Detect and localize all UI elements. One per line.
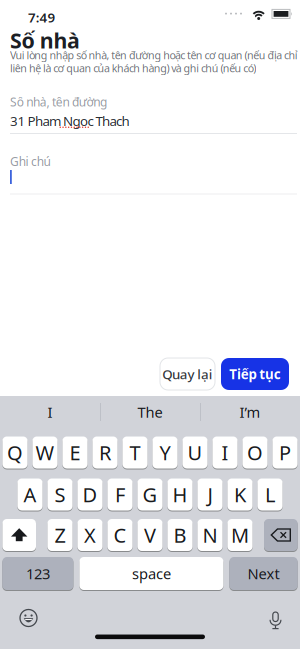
staticText: S [54, 481, 65, 508]
staticText: U [187, 439, 202, 466]
staticText: R [99, 439, 111, 466]
button[interactable]: I [212, 436, 238, 469]
staticText: T [129, 439, 140, 466]
staticText: P [279, 439, 291, 466]
button[interactable]: I’m [202, 400, 298, 424]
button[interactable]: W [32, 436, 58, 469]
button[interactable]: U [182, 436, 208, 469]
staticText: H [172, 481, 187, 508]
staticText: C [113, 522, 126, 548]
staticText: 7:49 [28, 8, 55, 26]
staticText: Q [7, 439, 23, 466]
staticText: 123 [26, 564, 50, 583]
staticText: Vui lòng nhập số nhà, tên đường hoặc tên… [10, 48, 298, 62]
staticText: B [173, 522, 186, 548]
button[interactable]: Y [152, 436, 178, 469]
staticText: K [234, 481, 246, 508]
button[interactable]: R [92, 436, 118, 469]
button[interactable]: space [79, 557, 223, 591]
staticText: Số nhà [10, 26, 80, 54]
button[interactable]: Ghi chú [10, 153, 297, 194]
button[interactable]: S [47, 478, 73, 511]
staticText: L [265, 481, 275, 508]
button[interactable]: Emoji [14, 604, 42, 632]
button[interactable]: P [272, 436, 298, 469]
staticText: V [144, 522, 156, 548]
button[interactable]: L [257, 478, 283, 511]
button[interactable]: N [197, 519, 223, 552]
button[interactable]: 123 [2, 557, 73, 591]
button[interactable]: F [107, 478, 133, 511]
staticText: I’m [239, 402, 260, 422]
button[interactable]: H [167, 478, 193, 511]
staticText: O [247, 439, 263, 466]
staticText: M [231, 522, 249, 548]
button[interactable]: D [77, 478, 103, 511]
staticText: Ghi chú [10, 153, 50, 169]
button[interactable]: Tiếp tục [221, 358, 289, 390]
button[interactable]: K [227, 478, 253, 511]
button[interactable]: I [2, 400, 98, 424]
staticText: F [115, 481, 125, 508]
staticText: Next [247, 564, 279, 583]
button[interactable]: V [137, 519, 163, 552]
button[interactable]: Delete [264, 519, 298, 552]
button[interactable]: B [167, 519, 193, 552]
staticText: liên hệ là cơ quan của khách hàng) và gh… [10, 61, 256, 75]
button[interactable]: E [62, 436, 88, 469]
staticText: space [132, 564, 171, 583]
staticText: J [207, 481, 212, 508]
button[interactable]: G [137, 478, 163, 511]
staticText: X [84, 522, 96, 548]
button[interactable]: Quay lại [160, 358, 215, 390]
staticText: I [47, 402, 52, 422]
button[interactable]: Z [47, 519, 73, 552]
staticText: G [142, 481, 157, 508]
button[interactable]: Q [2, 436, 28, 469]
staticText: D [82, 481, 97, 508]
staticText: The [137, 402, 162, 422]
staticText: W [35, 439, 54, 466]
button[interactable]: Số nhà, tên đường [10, 94, 297, 134]
staticText: Số nhà, tên đường [10, 94, 107, 110]
button[interactable]: The [102, 400, 198, 424]
button[interactable]: T [122, 436, 148, 469]
staticText: A [23, 481, 36, 508]
staticText: I [221, 439, 228, 466]
button[interactable]: J [197, 478, 223, 511]
staticText: Y [159, 439, 170, 466]
button[interactable]: O [242, 436, 268, 469]
staticText: N [202, 522, 217, 548]
button[interactable]: C [107, 519, 133, 552]
staticText: Z [54, 522, 65, 548]
button[interactable]: Next [229, 557, 298, 591]
button[interactable]: Shift [2, 519, 36, 552]
button[interactable]: Dictation [261, 607, 289, 635]
staticText: Quay lại [162, 365, 213, 383]
button[interactable]: A [17, 478, 43, 511]
button[interactable]: M [227, 519, 253, 552]
button[interactable]: X [77, 519, 103, 552]
staticText: E [69, 439, 80, 466]
staticText: 31 Pham Ngoc Thach [10, 112, 129, 130]
staticText: Tiếp tục [229, 365, 281, 383]
